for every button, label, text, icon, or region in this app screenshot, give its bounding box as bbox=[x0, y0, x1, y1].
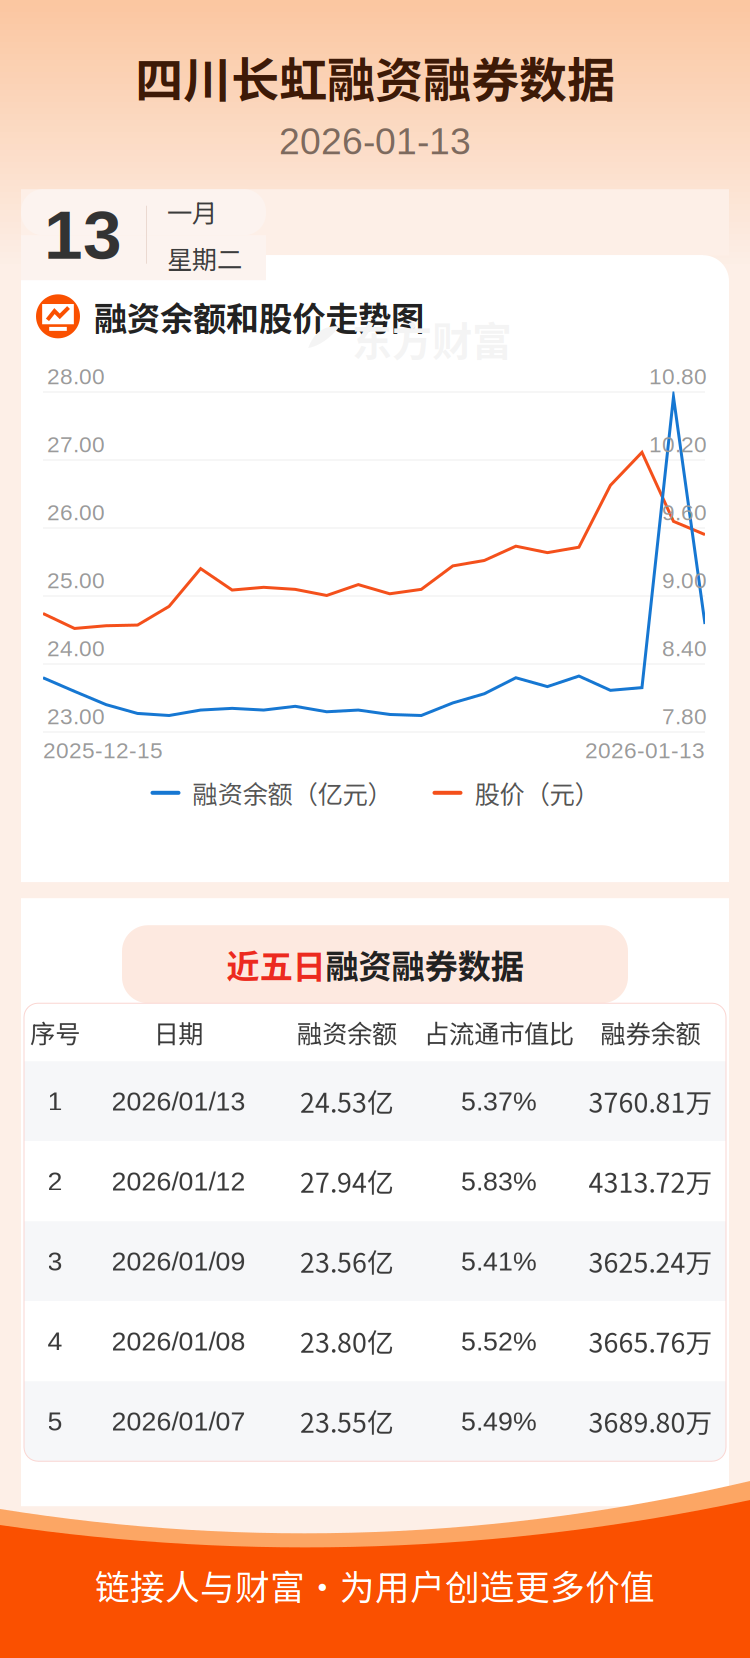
staticText: 23.56亿 bbox=[300, 1242, 394, 1280]
staticText: 2026-01-13 bbox=[279, 120, 471, 162]
staticText: 13 bbox=[44, 196, 122, 273]
staticText: 日期 bbox=[153, 1014, 203, 1051]
staticText: 3625.24万 bbox=[588, 1242, 712, 1280]
staticText: 23.55亿 bbox=[300, 1402, 394, 1440]
staticText: 26.00 bbox=[47, 500, 105, 525]
staticText: 27.00 bbox=[47, 432, 105, 457]
staticText: 9.00 bbox=[662, 568, 707, 593]
staticText: 24.53亿 bbox=[300, 1082, 394, 1120]
staticText: 25.00 bbox=[47, 568, 105, 593]
staticText: 融资余额（亿元） bbox=[192, 774, 392, 811]
staticText: 融券余额 bbox=[600, 1014, 700, 1051]
staticText: 融资余额和股价走势图 bbox=[94, 292, 424, 340]
staticText: 1 bbox=[47, 1086, 62, 1116]
staticText: 2026/01/13 bbox=[111, 1086, 245, 1116]
staticText: 融资融券数据 bbox=[325, 940, 523, 988]
staticText: 3760.81万 bbox=[588, 1082, 712, 1120]
staticText: 2 bbox=[47, 1166, 62, 1196]
staticText: 5 bbox=[47, 1406, 62, 1436]
staticText: 5.41% bbox=[461, 1246, 537, 1276]
staticText: 2026-01-13 bbox=[585, 738, 705, 763]
staticText: 5.37% bbox=[461, 1086, 537, 1116]
staticText: 序号 bbox=[30, 1014, 80, 1051]
staticText: 5.83% bbox=[461, 1166, 537, 1196]
staticText: 链接人与财富·为用户创造更多价值 bbox=[95, 1560, 655, 1610]
staticText: 四川长虹融资融券数据 bbox=[135, 42, 615, 111]
staticText: 2026/01/12 bbox=[111, 1166, 245, 1196]
staticText: 7.80 bbox=[662, 704, 707, 729]
staticText: 占流通市值比 bbox=[424, 1014, 574, 1051]
staticText: 2026/01/09 bbox=[111, 1246, 245, 1276]
staticText: 股价（元） bbox=[474, 774, 599, 811]
staticText: 10.80 bbox=[649, 364, 707, 389]
staticText: 东方财富 bbox=[352, 309, 512, 367]
staticText: 5.49% bbox=[461, 1406, 537, 1436]
staticText: 3689.80万 bbox=[588, 1402, 712, 1440]
staticText: 近五日 bbox=[226, 940, 325, 988]
staticText: 3 bbox=[47, 1246, 62, 1276]
staticText: 星期二 bbox=[167, 240, 242, 276]
staticText: 2026/01/07 bbox=[111, 1406, 245, 1436]
staticText: 一月 bbox=[167, 193, 217, 230]
staticText: 23.00 bbox=[47, 704, 105, 729]
staticText: 5.52% bbox=[461, 1326, 537, 1356]
staticText: 2025-12-15 bbox=[43, 738, 163, 763]
staticText: 8.40 bbox=[662, 636, 707, 661]
staticText: 4313.72万 bbox=[588, 1162, 712, 1200]
staticText: 融资余额 bbox=[297, 1014, 397, 1051]
staticText: 9.60 bbox=[662, 500, 707, 525]
staticText: 3665.76万 bbox=[588, 1322, 712, 1360]
staticText: 2026/01/08 bbox=[111, 1326, 245, 1356]
staticText: 24.00 bbox=[47, 636, 105, 661]
staticText: 27.94亿 bbox=[300, 1162, 394, 1200]
staticText: 4 bbox=[47, 1326, 62, 1356]
staticText: 23.80亿 bbox=[300, 1322, 394, 1360]
staticText: 10.20 bbox=[649, 432, 707, 457]
staticText: 28.00 bbox=[47, 364, 105, 389]
